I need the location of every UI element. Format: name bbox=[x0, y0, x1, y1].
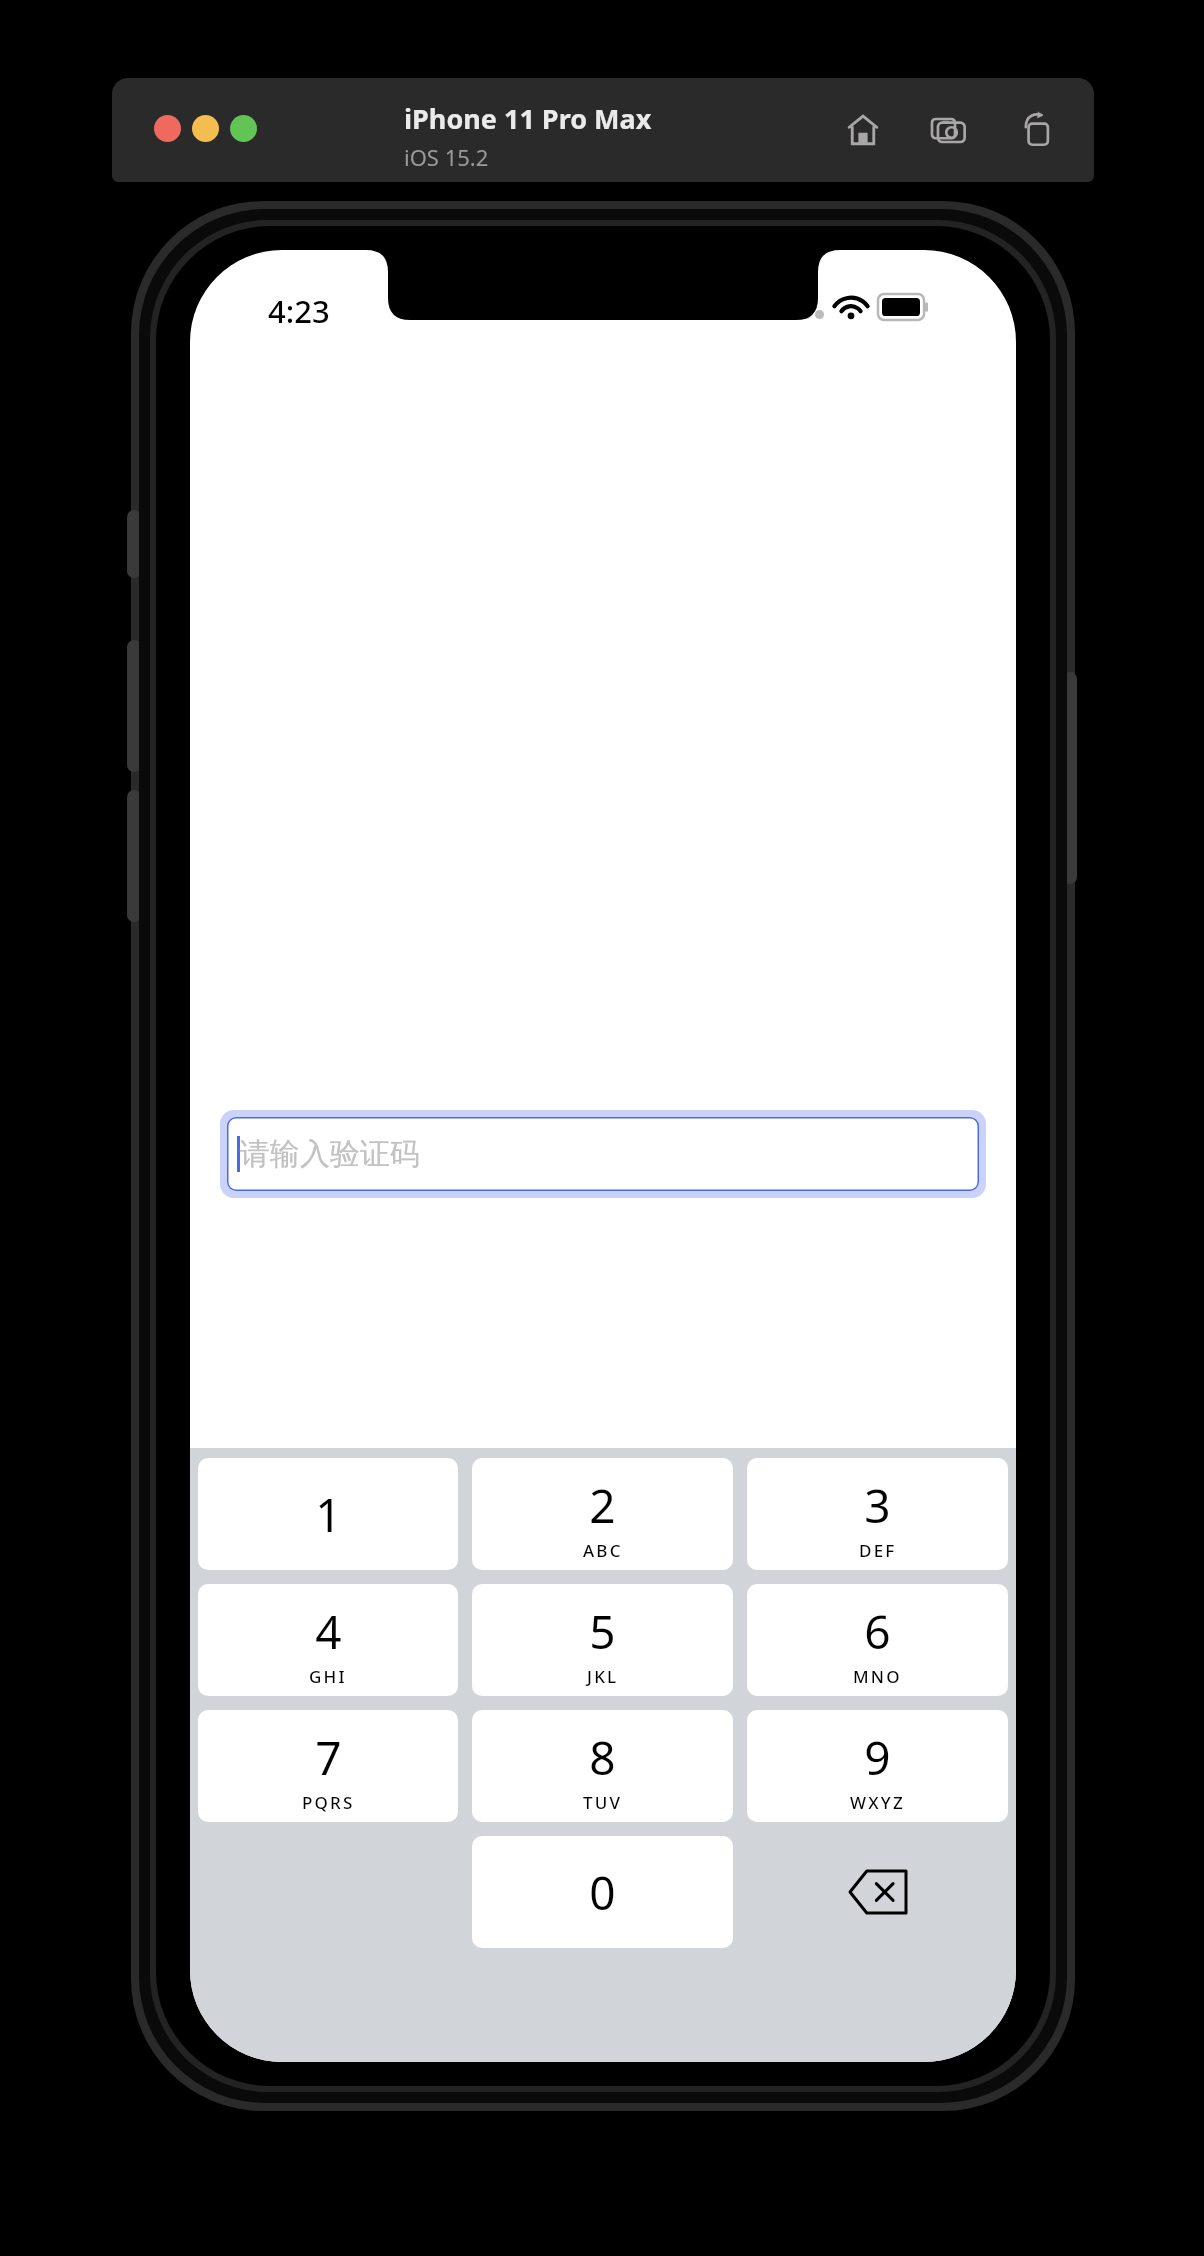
staticText: JKL bbox=[587, 1665, 619, 1688]
staticText: MNO bbox=[853, 1665, 902, 1688]
staticText: 1 bbox=[315, 1483, 342, 1546]
button[interactable]: Backspace bbox=[747, 1836, 1008, 1948]
button[interactable]: 1 bbox=[198, 1458, 458, 1570]
staticText: 6 bbox=[864, 1600, 891, 1663]
staticText: 5 bbox=[589, 1600, 616, 1663]
button[interactable]: Minimize bbox=[192, 115, 219, 142]
button[interactable]: 5 bbox=[472, 1584, 733, 1696]
staticText: PQRS bbox=[302, 1791, 355, 1814]
button[interactable]: 6 bbox=[747, 1584, 1008, 1696]
button[interactable]: 0 bbox=[472, 1836, 733, 1948]
button[interactable]: 4 bbox=[198, 1584, 458, 1696]
staticText: iPhone 11 Pro Max bbox=[404, 100, 652, 137]
button[interactable]: Rotate device bbox=[1006, 101, 1064, 159]
staticText: 2 bbox=[589, 1474, 616, 1537]
staticText: GHI bbox=[309, 1665, 347, 1688]
staticText: 3 bbox=[864, 1474, 891, 1537]
staticText: TUV bbox=[583, 1791, 623, 1814]
button[interactable]: 8 bbox=[472, 1710, 733, 1822]
button[interactable]: 2 bbox=[472, 1458, 733, 1570]
button[interactable]: 7 bbox=[198, 1710, 458, 1822]
staticText: ABC bbox=[583, 1539, 623, 1562]
staticText: 4:23 bbox=[268, 290, 330, 332]
staticText: iOS 15.2 bbox=[404, 142, 489, 172]
button[interactable]: Maximize bbox=[230, 115, 257, 142]
staticText: 7 bbox=[315, 1726, 342, 1789]
button[interactable]: 请输入验证码 bbox=[227, 1117, 979, 1191]
button[interactable]: Close bbox=[154, 115, 181, 142]
button[interactable]: 3 bbox=[747, 1458, 1008, 1570]
button[interactable]: 9 bbox=[747, 1710, 1008, 1822]
staticText: DEF bbox=[859, 1539, 897, 1562]
staticText: 9 bbox=[864, 1726, 891, 1789]
staticText: 4 bbox=[315, 1600, 342, 1663]
staticText: 0 bbox=[589, 1861, 616, 1924]
staticText: 8 bbox=[589, 1726, 616, 1789]
button[interactable]: Screenshot bbox=[920, 101, 978, 159]
staticText: WXYZ bbox=[850, 1791, 905, 1814]
staticText: 请输入验证码 bbox=[240, 1135, 420, 1173]
button[interactable]: Home bbox=[834, 101, 892, 159]
